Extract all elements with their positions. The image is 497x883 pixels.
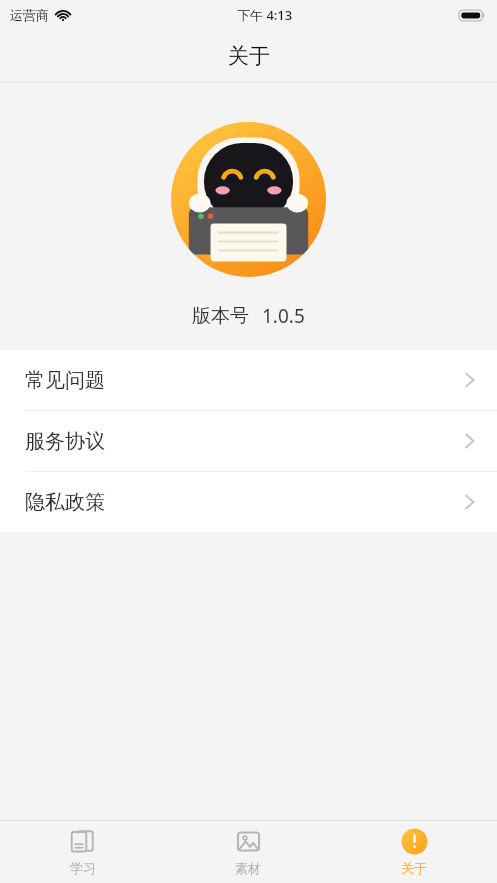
- button[interactable]: 隐私政策: [0, 472, 497, 532]
- staticText: 运营商: [10, 7, 49, 23]
- staticText: 版本号: [192, 304, 249, 328]
- button[interactable]: 服务协议: [0, 411, 497, 471]
- button[interactable]: 素材: [165, 828, 331, 876]
- staticText: 关于: [228, 43, 270, 69]
- staticText: 素材: [235, 860, 261, 876]
- staticText: 下午 4:13: [237, 6, 293, 24]
- staticText: 隐私政策: [25, 490, 105, 515]
- staticText: 服务协议: [25, 429, 105, 454]
- staticText: 常见问题: [25, 368, 105, 393]
- button[interactable]: 常见问题: [0, 350, 497, 410]
- staticText: 关于: [401, 860, 427, 876]
- staticText: 1.0.5: [262, 303, 305, 329]
- button[interactable]: 学习: [0, 828, 165, 876]
- staticText: 学习: [70, 860, 96, 876]
- button[interactable]: 关于: [331, 828, 497, 876]
